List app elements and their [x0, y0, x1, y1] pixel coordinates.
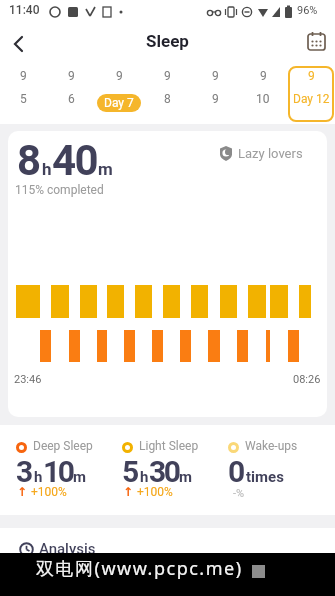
staticText: ↑ [123, 485, 137, 499]
staticText: 双电网(www.pcpc.me) [36, 556, 243, 581]
staticText: 08:26 [293, 373, 321, 386]
staticText: 9 [260, 69, 267, 83]
staticText: h [34, 468, 43, 486]
staticText: 40 [52, 136, 98, 185]
staticText: 5 [20, 92, 27, 106]
staticText: 115% completed [15, 183, 104, 197]
button[interactable] [300, 25, 332, 57]
button[interactable]: 9 [239, 64, 287, 124]
staticText: Wake-ups [245, 439, 298, 453]
staticText: 23:46 [14, 373, 42, 386]
button[interactable]: 9 [95, 64, 143, 124]
staticText: 5 [122, 454, 140, 489]
button[interactable]: 9 [0, 64, 47, 124]
staticText: 9 [68, 69, 75, 83]
button[interactable]: Analysis [0, 528, 335, 596]
staticText: 3 [16, 454, 34, 489]
staticText: +100% [137, 485, 173, 499]
staticText: 10 [43, 454, 73, 489]
staticText: +100% [31, 485, 67, 499]
staticText: 30 [149, 454, 179, 489]
button[interactable]: 9 [47, 64, 95, 124]
staticText: 11:40 [9, 3, 40, 17]
button[interactable]: 9 [143, 64, 191, 124]
staticText: Lazy lovers [238, 146, 303, 161]
button[interactable]: 9 [191, 64, 239, 124]
button[interactable] [2, 28, 34, 60]
staticText: Deep Sleep [33, 439, 93, 453]
staticText: m [73, 468, 86, 486]
staticText: 0 [228, 454, 246, 489]
staticText: Day 12 [293, 92, 330, 106]
staticText: 6 [68, 92, 75, 106]
staticText: 9 [308, 69, 315, 83]
staticText: 10 [256, 92, 270, 106]
staticText: m [179, 468, 192, 486]
staticText: 8 [17, 136, 42, 185]
button[interactable]: 9 [287, 64, 335, 124]
staticText: -% [233, 487, 245, 500]
staticText: 9 [20, 69, 27, 83]
staticText: 9 [212, 92, 219, 106]
staticText: 8 [164, 92, 171, 106]
staticText: 9 [116, 69, 123, 83]
staticText: Light Sleep [139, 439, 199, 453]
staticText: times [246, 468, 284, 486]
staticText: h [140, 468, 149, 486]
staticText: Day 7 [104, 96, 134, 110]
staticText: 9 [212, 69, 219, 83]
staticText: Sleep [146, 31, 189, 51]
staticText: h [42, 159, 52, 179]
staticText: m [98, 159, 113, 179]
staticText: ↑ [17, 485, 31, 499]
staticText: 9 [164, 69, 171, 83]
staticText: 96% [297, 4, 318, 17]
staticText: Analysis [39, 540, 96, 558]
